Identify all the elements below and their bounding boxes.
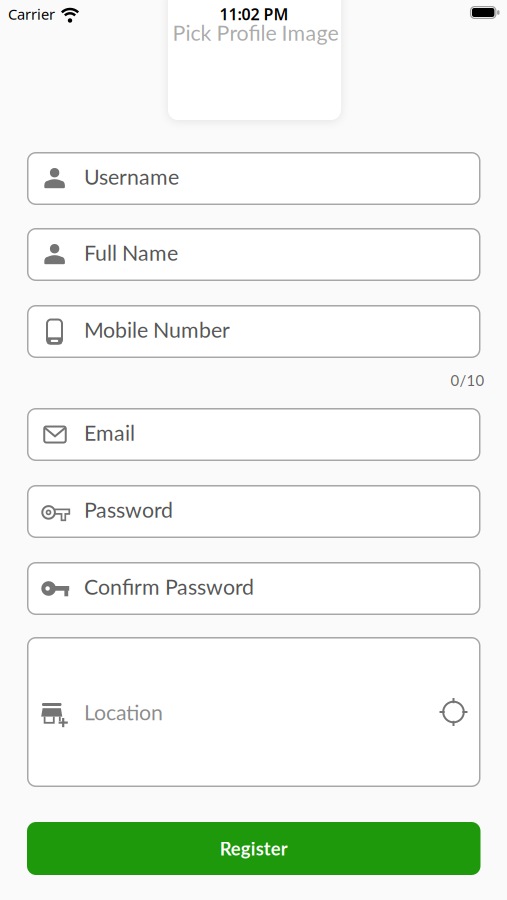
staticText: Mobile Number bbox=[84, 317, 230, 342]
staticText: Pick Profile Image bbox=[172, 20, 338, 45]
staticText: 11:02 PM bbox=[219, 3, 288, 25]
staticText: Email bbox=[84, 420, 135, 445]
staticText: Full Name bbox=[84, 240, 178, 265]
staticText: Carrier bbox=[8, 4, 55, 24]
staticText: Password bbox=[84, 497, 173, 522]
staticText: Confirm Password bbox=[84, 574, 254, 599]
staticText: Username bbox=[84, 164, 179, 189]
staticText: Location bbox=[84, 699, 163, 725]
staticText: Register bbox=[220, 837, 288, 860]
staticText: 0/10 bbox=[450, 371, 484, 389]
